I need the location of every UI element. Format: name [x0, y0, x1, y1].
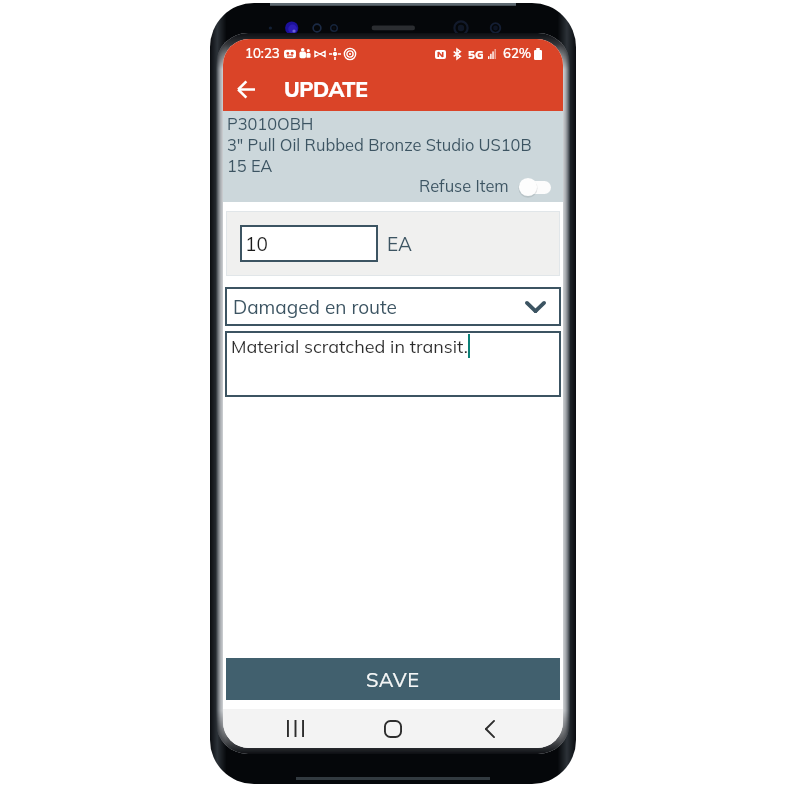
staticText: 3" Pull Oil Rubbed Bronze Studio US10B [227, 135, 532, 156]
staticText: EA [387, 232, 412, 256]
staticText: Material scratched in transit. [231, 335, 468, 358]
staticText: 5G [468, 47, 484, 61]
staticText: 10 [245, 232, 268, 256]
button[interactable]: Back [223, 68, 268, 111]
staticText: UPDATE [284, 76, 368, 102]
button[interactable]: Back [468, 709, 512, 748]
staticText: Damaged en route [233, 295, 397, 319]
button[interactable]: 10 [240, 225, 378, 262]
button[interactable]: SAVE [226, 658, 560, 700]
staticText: 10:23 [245, 45, 280, 62]
staticText: Refuse Item [419, 176, 509, 197]
button[interactable]: Material scratched in transit. [225, 331, 561, 397]
staticText: P3010OBH [227, 114, 314, 135]
staticText: SAVE [366, 667, 420, 692]
button[interactable]: Recent apps [273, 709, 317, 748]
staticText: 15 EA [227, 156, 273, 177]
button[interactable]: Damaged en route [225, 287, 561, 326]
button[interactable]: Home [371, 709, 415, 748]
staticText: 62% [503, 45, 532, 62]
button[interactable]: Refuse Item [419, 176, 551, 197]
